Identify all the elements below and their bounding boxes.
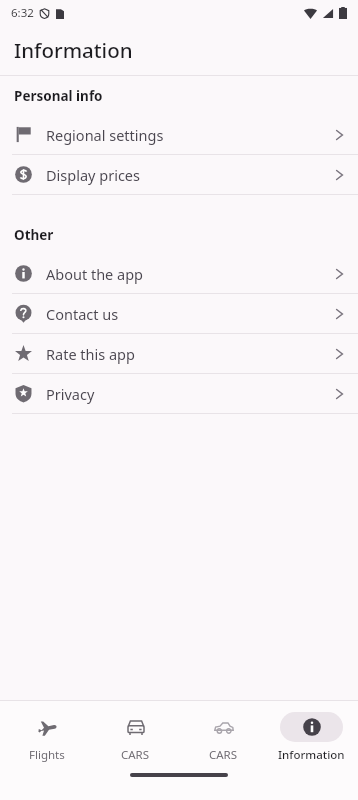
staticText: Privacy (46, 384, 95, 404)
staticText: Flights (29, 747, 65, 763)
staticText: CARS (209, 747, 238, 763)
staticText: Regional settings (46, 125, 164, 145)
staticText: Display prices (46, 165, 140, 185)
button[interactable]: Flights (6, 712, 88, 763)
staticText: Personal info (14, 87, 103, 105)
staticText: Information (278, 747, 345, 763)
staticText: About the app (46, 264, 144, 284)
button[interactable]: Information (270, 712, 352, 763)
staticText: Rate this app (46, 344, 135, 364)
staticText: Information (14, 36, 133, 64)
button[interactable]: Contact us (0, 294, 358, 333)
button[interactable]: Privacy (0, 374, 358, 413)
button[interactable]: CARS (182, 712, 264, 763)
button[interactable]: Regional settings (0, 115, 358, 154)
button[interactable]: About the app (0, 254, 358, 293)
button[interactable]: Display prices (0, 155, 358, 194)
button[interactable]: Rate this app (0, 334, 358, 373)
staticText: Contact us (46, 304, 119, 324)
button[interactable]: CARS (94, 712, 176, 763)
staticText: Other (14, 226, 54, 244)
staticText: 6:32 (11, 5, 34, 21)
staticText: CARS (121, 747, 150, 763)
